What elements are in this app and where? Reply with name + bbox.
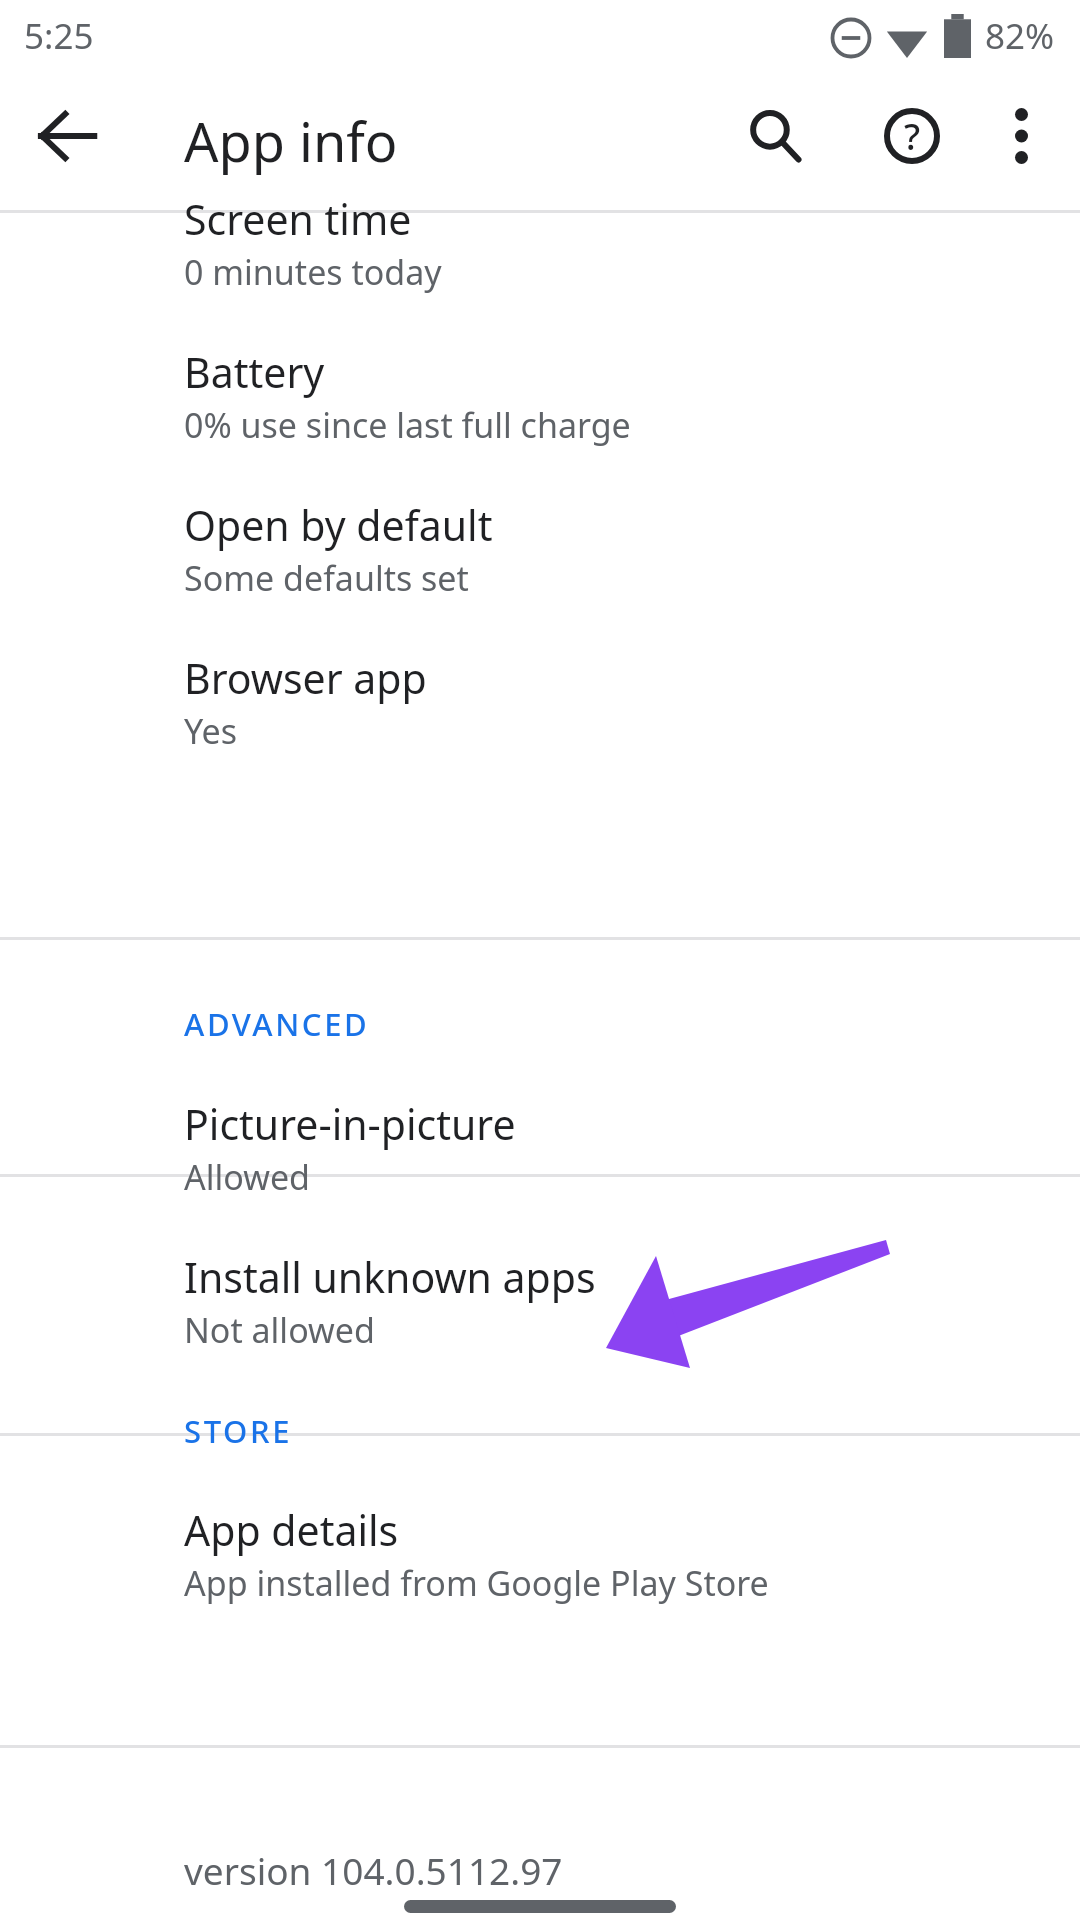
button[interactable]: More options [966,81,1076,191]
staticText: STORE [184,1410,293,1452]
staticText: Install unknown apps [184,1249,596,1305]
button[interactable]: Search [720,81,830,191]
staticText: 0% use since last full charge [184,402,631,448]
staticText: Yes [184,708,238,754]
button[interactable]: Install unknown apps [0,1243,1080,1383]
staticText: App info [184,104,398,178]
staticText: ? [904,112,921,161]
button[interactable]: Back [12,81,122,191]
staticText: ADVANCED [184,1003,370,1045]
staticText: Not allowed [184,1307,375,1353]
staticText: 5:25 [24,12,94,60]
other: Do not disturb [830,17,872,59]
staticText: Battery [184,344,325,400]
button[interactable]: App details [0,1496,1080,1636]
staticText: 0 minutes today [184,249,442,295]
staticText: Screen time [184,191,412,247]
button[interactable]: Browser app [0,644,1080,784]
staticText: Browser app [184,650,427,706]
staticText: Some defaults set [184,555,469,601]
button[interactable]: Open by default [0,491,1080,631]
staticText: 82% [985,12,1055,60]
staticText: App details [184,1502,399,1558]
staticText: Open by default [184,497,493,553]
button[interactable]: Picture-in-picture [0,1090,1080,1230]
staticText: Allowed [184,1154,310,1200]
button[interactable]: Help [857,81,967,191]
button[interactable]: Screen time [0,185,1080,325]
staticText: App installed from Google Play Store [184,1560,769,1606]
staticText: Picture-in-picture [184,1096,516,1152]
button[interactable]: Battery [0,338,1080,478]
staticText: version 104.0.5112.97 [184,1845,563,1895]
